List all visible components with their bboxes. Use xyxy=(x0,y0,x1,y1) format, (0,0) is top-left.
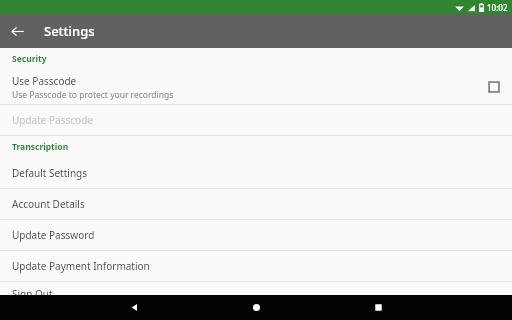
button[interactable]: Update Payment Information xyxy=(0,251,512,281)
staticText: Security xyxy=(12,53,47,65)
staticText: Update Passcode xyxy=(12,113,93,127)
staticText: Sign Out xyxy=(12,287,53,295)
button[interactable]: Update Password xyxy=(0,220,512,250)
staticText: Use Passcode to protect your recordings xyxy=(12,89,174,101)
staticText: Account Details xyxy=(12,197,85,211)
button[interactable]: Back xyxy=(0,14,34,48)
button[interactable]: Home xyxy=(241,295,271,320)
button[interactable]: Use Passcode xyxy=(0,70,512,104)
staticText: Update Payment Information xyxy=(12,259,150,273)
staticText: 10:02 xyxy=(487,2,508,13)
button[interactable]: Recent apps xyxy=(363,295,393,320)
staticText: Use Passcode xyxy=(12,74,77,88)
button[interactable]: Sign Out xyxy=(0,282,512,295)
staticText: Update Password xyxy=(12,228,95,242)
button[interactable]: Back xyxy=(119,295,149,320)
staticText: Default Settings xyxy=(12,166,88,180)
button[interactable]: Default Settings xyxy=(0,158,512,188)
button[interactable]: Account Details xyxy=(0,189,512,219)
staticText: Transcription xyxy=(12,141,69,153)
staticText: Settings xyxy=(44,22,95,40)
